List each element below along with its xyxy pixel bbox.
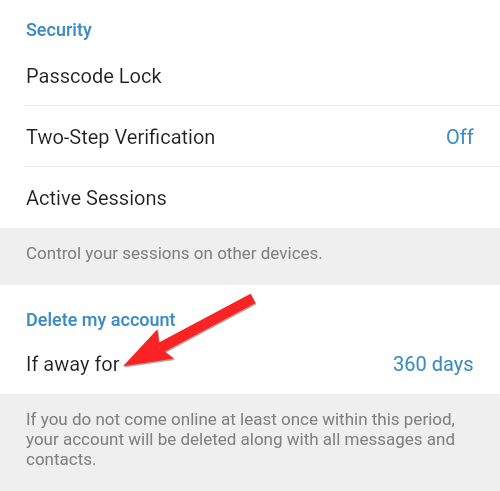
other: Annotation arrow pointing to If away for: [118, 288, 260, 373]
staticText: Control your sessions on other devices.: [26, 243, 323, 263]
staticText: Passcode Lock: [26, 64, 162, 87]
staticText: Security: [26, 19, 92, 40]
button[interactable]: Active Sessions: [0, 167, 500, 228]
button[interactable]: Two-Step Verification: [0, 106, 500, 166]
button[interactable]: If away for: [0, 341, 500, 385]
staticText: 360 days: [393, 352, 474, 375]
staticText: If you do not come online at least once …: [26, 409, 474, 469]
staticText: Two-Step Verification: [26, 125, 216, 148]
staticText: Active Sessions: [26, 186, 167, 209]
staticText: Delete my account: [26, 309, 176, 330]
staticText: Off: [446, 125, 474, 148]
staticText: If away for: [26, 352, 120, 375]
button[interactable]: Passcode Lock: [0, 60, 500, 106]
